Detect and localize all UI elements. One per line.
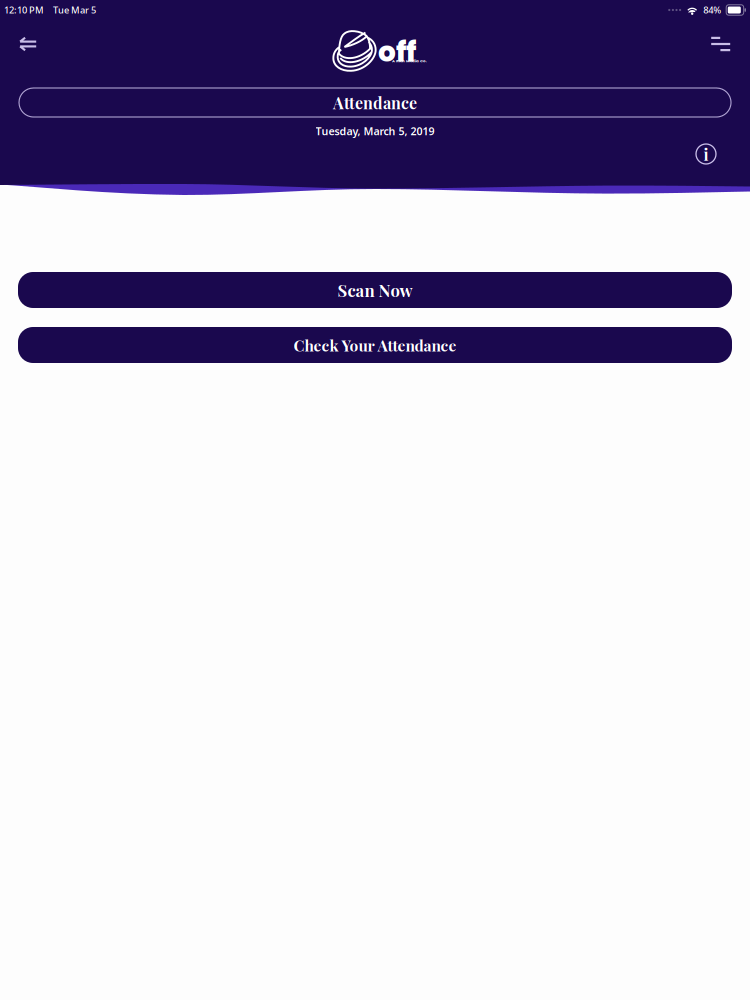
staticText: Tue Mar 5 [53, 4, 96, 16]
button[interactable]: Attendance [19, 88, 731, 117]
button[interactable]: Back [8, 33, 48, 65]
staticText: A Rich Media Co. [392, 58, 427, 64]
button[interactable]: Scan Now [18, 272, 732, 308]
button[interactable]: Menu [699, 33, 742, 65]
staticText: Tuesday, March 5, 2019 [315, 124, 434, 138]
staticText: Check Your Attendance [293, 335, 456, 355]
staticText: off [378, 32, 416, 71]
staticText: 84% [703, 4, 721, 16]
staticText: Attendance [333, 92, 417, 113]
button[interactable]: Check Your Attendance [18, 327, 732, 363]
staticText: Scan Now [337, 279, 412, 301]
staticText: 12:10 PM [4, 4, 44, 16]
staticText: i [703, 143, 708, 165]
button[interactable]: Information [689, 137, 723, 171]
